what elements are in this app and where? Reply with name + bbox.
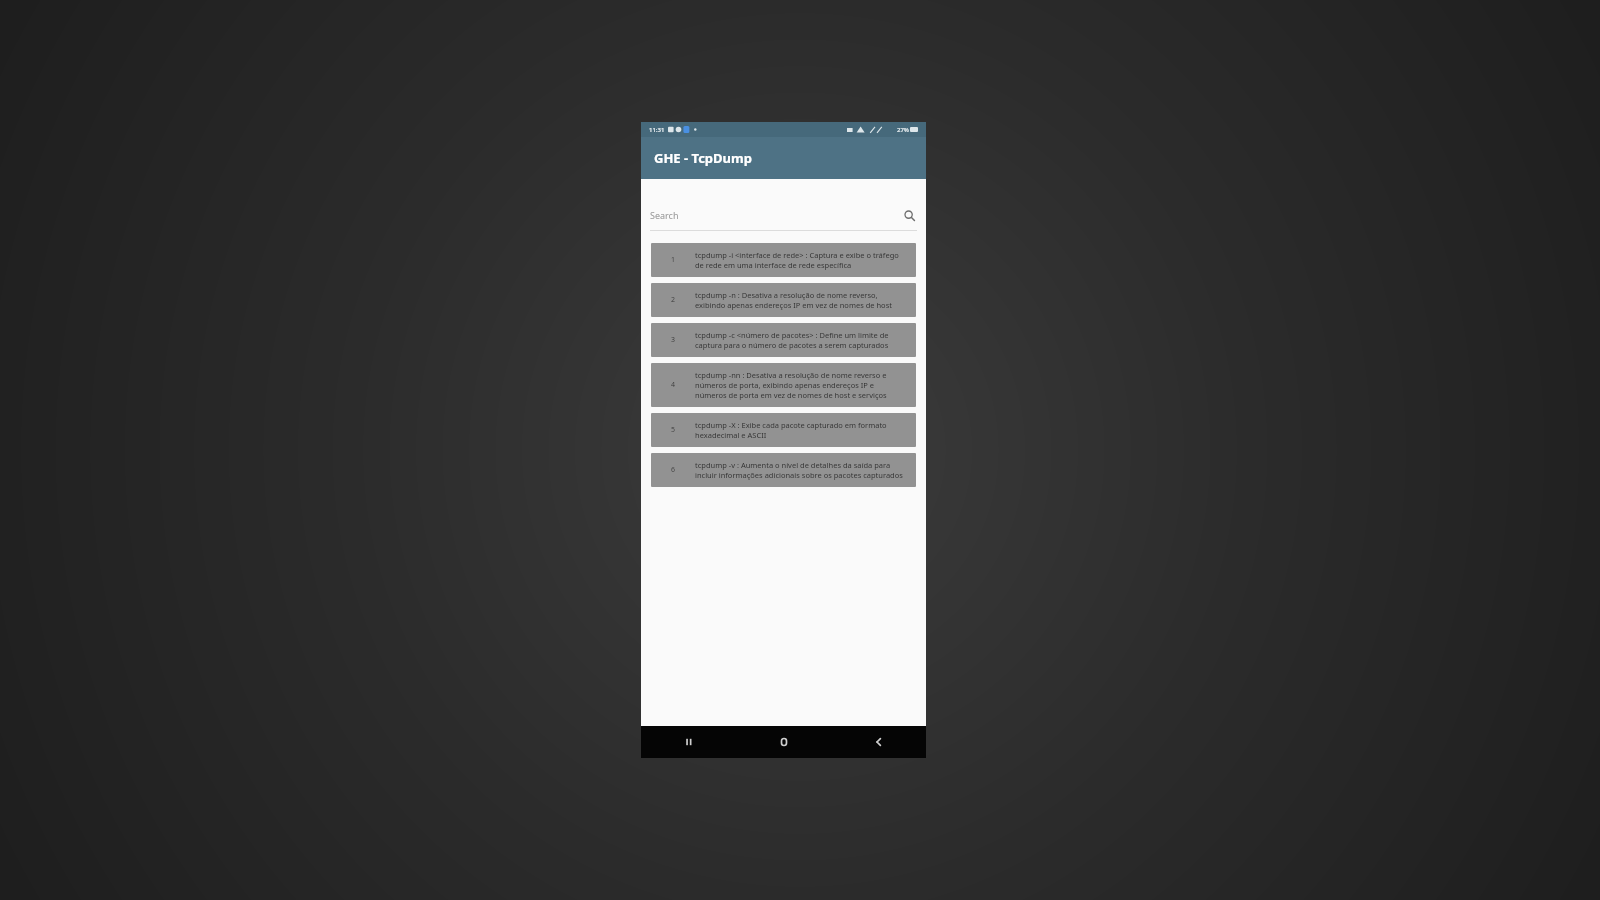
staticText: tcpdump -i <interface de rede> : Captura… <box>695 250 906 270</box>
staticText: 27% <box>897 126 909 134</box>
staticText: 4 <box>671 380 676 390</box>
button[interactable]: Back <box>831 726 926 758</box>
staticText: 2 <box>671 295 676 305</box>
button[interactable]: 1 <box>651 243 916 277</box>
staticText: tcpdump -c <número de pacotes> : Define … <box>695 330 906 350</box>
button[interactable]: 5 <box>651 413 916 447</box>
button[interactable]: 3 <box>651 323 916 357</box>
button[interactable]: Recents <box>641 726 736 758</box>
button[interactable]: 4 <box>651 363 916 407</box>
staticText: 6 <box>671 465 676 475</box>
staticText: tcpdump -v : Aumenta o nível de detalhes… <box>695 460 906 480</box>
button[interactable]: Home <box>736 726 831 758</box>
staticText: 1 <box>671 255 676 265</box>
staticText: tcpdump -nn : Desativa a resolução de no… <box>695 370 906 400</box>
button[interactable]: 6 <box>651 453 916 487</box>
button[interactable]: Search <box>641 202 926 228</box>
other: Search <box>901 207 917 223</box>
staticText: 11:31 <box>649 126 665 134</box>
button[interactable]: 2 <box>651 283 916 317</box>
staticText: tcpdump -n : Desativa a resolução de nom… <box>695 290 906 310</box>
staticText: 3 <box>671 335 676 345</box>
staticText: tcpdump -X : Exibe cada pacote capturado… <box>695 420 906 440</box>
staticText: Search <box>650 209 679 221</box>
staticText: 5 <box>671 425 676 435</box>
staticText: GHE - TcpDump <box>654 149 752 167</box>
